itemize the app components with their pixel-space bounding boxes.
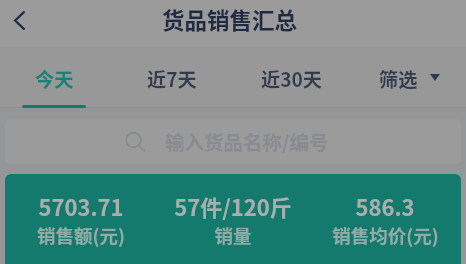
- staticText: 5703.71: [38, 190, 124, 222]
- staticText: 输入货品名称/编号: [165, 127, 329, 155]
- staticText: 近30天: [261, 65, 323, 93]
- button[interactable]: 今天: [0, 48, 112, 108]
- staticText: 筛选: [379, 65, 418, 93]
- staticText: 今天: [35, 65, 74, 93]
- staticText: 销量: [214, 222, 252, 249]
- staticText: 586.3: [355, 190, 415, 222]
- button[interactable]: 近30天: [234, 48, 350, 108]
- button[interactable]: 近7天: [114, 48, 230, 108]
- button[interactable]: 输入货品名称/编号: [5, 119, 461, 164]
- staticText: 57件/120斤: [174, 190, 292, 222]
- button[interactable]: Back: [0, 0, 42, 43]
- staticText: 销售均价(元): [332, 222, 439, 249]
- staticText: 货品销售汇总: [162, 3, 298, 36]
- staticText: 近7天: [147, 65, 197, 93]
- button[interactable]: 筛选: [355, 48, 466, 108]
- staticText: 销售额(元): [37, 222, 125, 249]
